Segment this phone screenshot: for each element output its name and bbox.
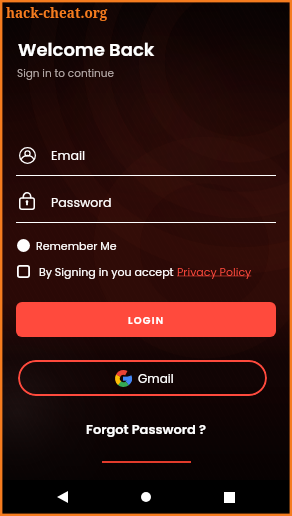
button[interactable]: Recent apps xyxy=(214,482,244,512)
button[interactable]: Password xyxy=(16,189,276,223)
staticText: Sign in to continue xyxy=(17,66,114,81)
staticText: Welcome Back xyxy=(18,37,155,62)
button[interactable]: Privacy Policy xyxy=(177,264,252,279)
button[interactable]: Accept privacy policy xyxy=(17,265,30,278)
button[interactable]: Gmail xyxy=(18,360,267,396)
button[interactable]: Back xyxy=(47,482,77,512)
staticText: hack-cheat.org xyxy=(6,4,108,22)
staticText: Forgot Password ? xyxy=(86,420,206,438)
button[interactable]: LOGIN xyxy=(16,302,276,337)
staticText: Remember Me xyxy=(36,238,117,253)
staticText: Password xyxy=(51,194,112,212)
button[interactable]: Forgot Password ? xyxy=(0,415,292,469)
staticText: Email xyxy=(51,147,86,165)
staticText: By Signing in you accept xyxy=(39,264,177,279)
button[interactable]: Email xyxy=(16,142,276,176)
staticText: Gmail xyxy=(138,370,174,387)
button[interactable]: Home xyxy=(131,482,161,512)
button[interactable]: Remember Me xyxy=(17,238,117,253)
staticText: LOGIN xyxy=(128,313,165,327)
